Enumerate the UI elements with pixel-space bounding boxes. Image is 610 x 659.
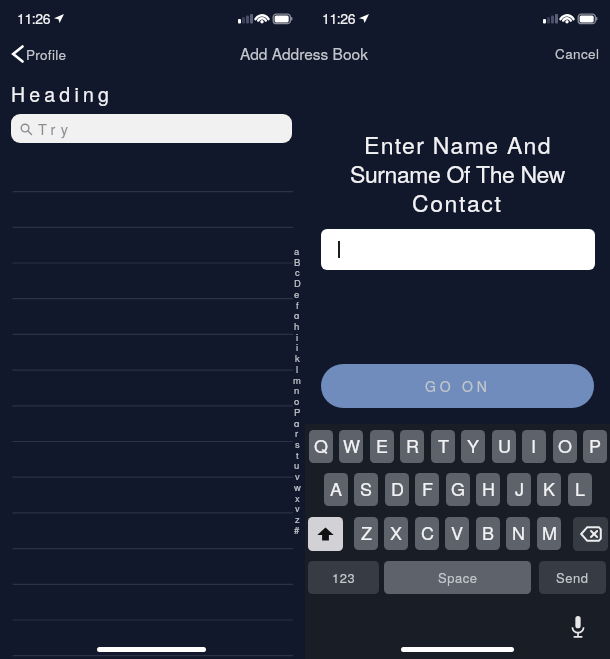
button[interactable]: e [290, 287, 304, 298]
button[interactable]: D [290, 276, 304, 287]
button[interactable]: c [290, 265, 304, 276]
staticText: i [296, 330, 299, 341]
staticText: w [294, 480, 301, 491]
staticText: B [294, 255, 301, 266]
button[interactable]: Try [11, 114, 292, 143]
button[interactable]: E [370, 430, 394, 463]
button[interactable]: v [290, 469, 304, 480]
staticText: C [421, 519, 434, 545]
button[interactable]: k [290, 351, 304, 362]
button[interactable]: X [384, 517, 408, 550]
staticText: Cancel [555, 44, 600, 63]
staticText: Send [556, 568, 589, 587]
button[interactable]: x [290, 491, 304, 502]
button[interactable]: K [537, 473, 561, 506]
staticText: L [575, 475, 586, 501]
button[interactable]: Backspace [573, 517, 608, 551]
button[interactable]: J [507, 473, 531, 506]
button[interactable]: l [290, 362, 304, 373]
button[interactable]: B [476, 517, 500, 550]
staticText: D [294, 276, 301, 287]
button[interactable]: Space [384, 561, 531, 594]
button[interactable]: Send [539, 561, 606, 594]
button[interactable]: u [290, 458, 304, 469]
button[interactable]: f [290, 298, 304, 309]
button[interactable]: a [290, 244, 304, 255]
staticText: A [330, 475, 343, 501]
staticText: S [360, 475, 373, 501]
staticText: O [558, 432, 573, 458]
button[interactable]: G [446, 473, 470, 506]
staticText: l [296, 362, 299, 373]
staticText: o [294, 394, 300, 405]
staticText: Enter Name And [364, 128, 552, 157]
button[interactable]: B [290, 255, 304, 266]
button[interactable]: Dictation [566, 615, 590, 639]
button[interactable]: P [290, 405, 304, 416]
button[interactable]: n [290, 383, 304, 394]
staticText: W [343, 432, 360, 458]
button[interactable]: g [290, 308, 304, 319]
button[interactable]: z [290, 512, 304, 523]
button[interactable]: i [290, 330, 304, 341]
button[interactable]: R [400, 430, 424, 463]
button[interactable]: I [522, 430, 546, 463]
button[interactable]: Shift [308, 517, 343, 551]
staticText: Heading [11, 80, 114, 108]
button[interactable]: Z [354, 517, 378, 550]
staticText: Q [314, 432, 329, 458]
button[interactable]: # [290, 523, 304, 534]
button[interactable]: m [290, 373, 304, 384]
button[interactable]: q [290, 416, 304, 427]
staticText: n [294, 383, 300, 394]
button[interactable]: T [431, 430, 455, 463]
button[interactable]: P [583, 430, 607, 463]
staticText: E [376, 432, 389, 458]
staticText: I [531, 432, 537, 458]
button[interactable]: GO ON [321, 364, 594, 408]
button[interactable]: N [506, 517, 530, 550]
staticText: N [512, 519, 525, 545]
staticText: g [294, 308, 300, 319]
button[interactable]: V [445, 517, 469, 550]
button[interactable]: L [568, 473, 592, 506]
button[interactable]: s [290, 437, 304, 448]
button[interactable]: A [324, 473, 348, 506]
button[interactable]: F [415, 473, 439, 506]
staticText: T [438, 432, 449, 458]
staticText: P [589, 432, 602, 458]
staticText: 11:26 [17, 8, 51, 28]
staticText: v [295, 469, 300, 480]
staticText: Profile [26, 45, 67, 64]
staticText: Space [438, 568, 478, 587]
button[interactable]: 123 [308, 561, 379, 594]
button[interactable]: U [492, 430, 516, 463]
button[interactable]: W [339, 430, 363, 463]
staticText: Surname Of The New [350, 157, 565, 186]
button[interactable]: Profile [12, 44, 67, 64]
button[interactable] [321, 229, 595, 270]
button[interactable]: j [290, 340, 304, 351]
staticText: R [406, 432, 419, 458]
button[interactable]: y [290, 501, 304, 512]
button[interactable]: r [290, 426, 304, 437]
button[interactable]: Y [461, 430, 485, 463]
button[interactable]: O [553, 430, 577, 463]
staticText: GO ON [425, 376, 491, 396]
button[interactable]: H [476, 473, 500, 506]
staticText: H [482, 475, 495, 501]
button[interactable]: o [290, 394, 304, 405]
button[interactable]: C [415, 517, 439, 550]
button[interactable]: D [385, 473, 409, 506]
staticText: V [451, 519, 464, 545]
button[interactable]: M [537, 517, 561, 550]
staticText: c [295, 265, 300, 276]
button[interactable]: t [290, 448, 304, 459]
button[interactable]: Q [309, 430, 333, 463]
button[interactable]: w [290, 480, 304, 491]
staticText: Y [467, 432, 480, 458]
staticText: Contact [412, 186, 503, 215]
button[interactable]: h [290, 319, 304, 330]
button[interactable]: Cancel [555, 44, 600, 63]
button[interactable]: S [354, 473, 378, 506]
